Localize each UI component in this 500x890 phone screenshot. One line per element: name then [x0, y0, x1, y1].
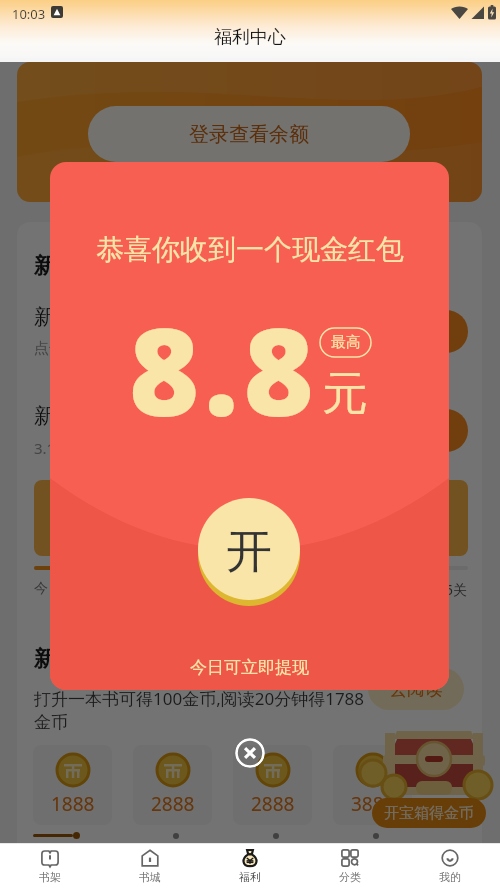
- staticText: 1888: [51, 791, 95, 817]
- staticText: 打升一本书可得100金币,阅读20分钟得1788 金币: [34, 687, 365, 733]
- staticText: 书城: [139, 870, 161, 884]
- staticText: 8.8: [129, 288, 319, 451]
- staticText: 我的: [439, 870, 461, 884]
- button[interactable]: 我的: [400, 844, 500, 884]
- staticText: 第5关: [431, 580, 468, 599]
- staticText: 登录查看余额: [189, 122, 309, 147]
- staticText: 新人任务: [34, 645, 122, 673]
- staticText: 新手福利: [34, 252, 122, 280]
- staticText: 开宝箱得金币: [384, 804, 474, 823]
- staticText: 元: [322, 365, 368, 423]
- staticText: 10:03: [12, 5, 46, 23]
- staticText: 新人阅读任务: [34, 403, 160, 429]
- button[interactable]: 开宝箱得金币: [372, 798, 486, 828]
- button[interactable]: Close: [235, 738, 265, 768]
- staticText: 福利中心: [214, 26, 286, 49]
- button[interactable]: 书架: [0, 844, 100, 884]
- button[interactable]: 开: [197, 497, 301, 609]
- staticText: 福利: [239, 870, 261, 884]
- button[interactable]: 领取: [400, 310, 468, 353]
- button[interactable]: 登录查看余额: [88, 106, 410, 162]
- staticText: 今日可立即提现: [190, 657, 309, 678]
- staticText: 书架: [39, 870, 61, 884]
- staticText: 点击领取现金奖励: [34, 339, 154, 358]
- button[interactable]: 2888: [133, 745, 212, 825]
- button[interactable]: 3888: [333, 745, 412, 825]
- staticText: 恭喜你收到一个现金红包: [96, 232, 404, 267]
- staticText: 3888: [351, 791, 395, 817]
- staticText: 开: [226, 523, 272, 581]
- staticText: 新人专享红包: [34, 304, 160, 330]
- staticText: 2888: [251, 791, 295, 817]
- button[interactable]: 1888: [33, 745, 112, 825]
- button[interactable]: 书城: [100, 844, 200, 884]
- button[interactable]: 去阅读: [368, 668, 464, 710]
- button[interactable]: 福利: [200, 844, 300, 884]
- button[interactable]: 分类: [300, 844, 400, 884]
- staticText: 去阅读: [389, 678, 443, 701]
- button[interactable]: 2888: [233, 745, 312, 825]
- staticText: 今日阅读时长: [34, 580, 118, 598]
- staticText: 2888: [151, 791, 195, 817]
- staticText: 分类: [339, 870, 361, 884]
- button[interactable]: 领取: [400, 409, 468, 452]
- staticText: 3.1元现金奖励待领取: [34, 438, 176, 458]
- staticText: 最高: [331, 333, 361, 352]
